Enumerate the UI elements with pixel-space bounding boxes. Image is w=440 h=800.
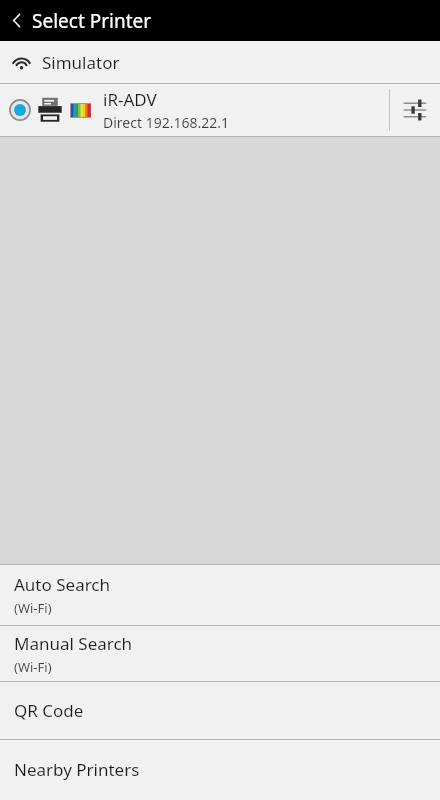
- button[interactable]: Back: [0, 0, 32, 41]
- staticText: Manual Search: [14, 632, 133, 655]
- button[interactable]: Printer settings: [390, 84, 440, 136]
- staticText: Auto Search: [14, 573, 111, 596]
- staticText: (Wi-Fi): [14, 658, 52, 676]
- button[interactable]: Manual Search: [0, 626, 440, 681]
- button[interactable]: Nearby Printers: [0, 740, 440, 798]
- staticText: Direct 192.168.22.1: [103, 113, 229, 132]
- staticText: Simulator: [42, 51, 120, 74]
- button[interactable]: Auto Search: [0, 565, 440, 625]
- staticText: Nearby Printers: [14, 758, 140, 781]
- staticText: QR Code: [14, 699, 84, 722]
- staticText: Select Printer: [32, 8, 152, 34]
- button[interactable]: iR-ADV: [0, 84, 440, 136]
- button[interactable]: Simulator: [0, 41, 440, 83]
- staticText: iR-ADV: [103, 88, 157, 111]
- staticText: (Wi-Fi): [14, 599, 52, 617]
- button[interactable]: QR Code: [0, 682, 440, 739]
